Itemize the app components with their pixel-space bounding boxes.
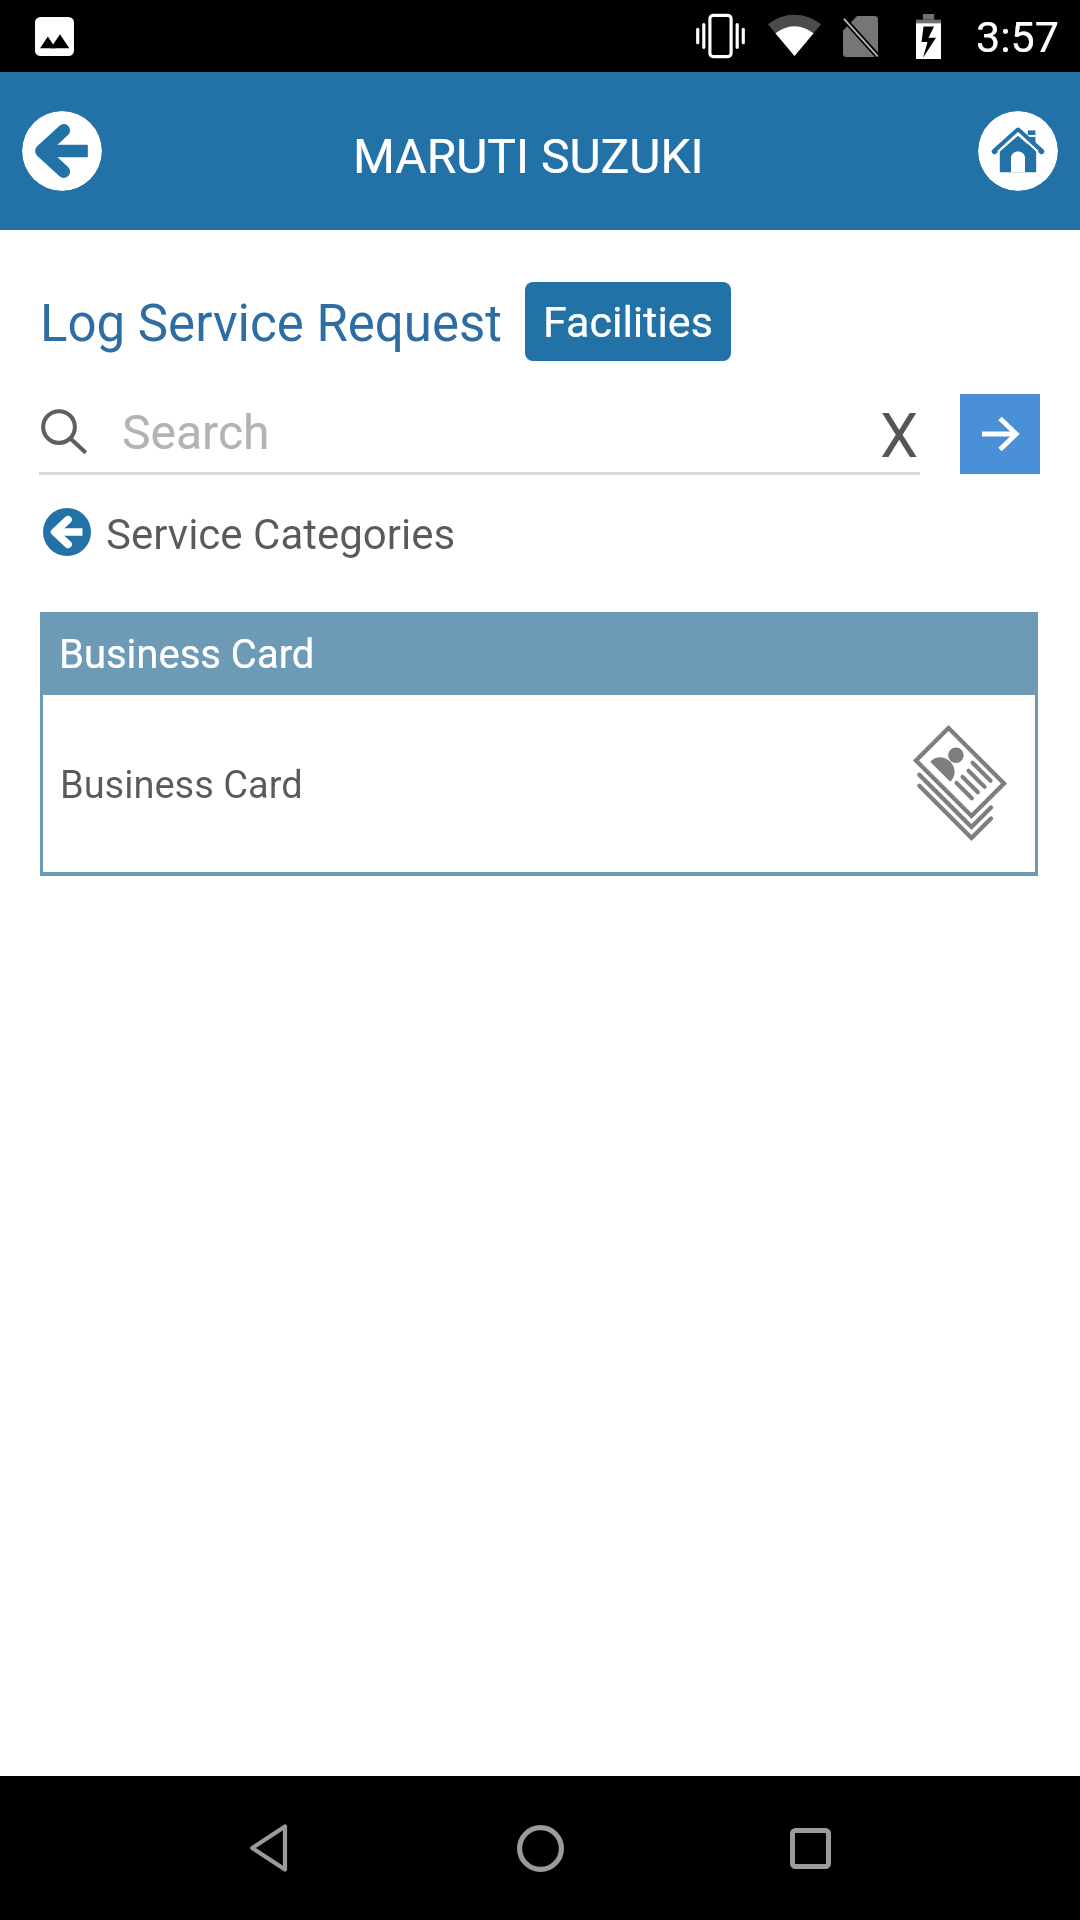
staticText: Business Card (60, 763, 303, 808)
staticText: Business Card (59, 631, 315, 678)
button[interactable]: Home (468, 1776, 612, 1920)
staticText: Search (122, 404, 270, 460)
button[interactable]: Service Categories (0, 508, 1080, 556)
button[interactable]: Submit search (960, 394, 1040, 474)
button[interactable]: Home (978, 111, 1058, 191)
button[interactable]: Business Card (40, 612, 1038, 876)
button[interactable]: Facilities (525, 282, 731, 361)
staticText: Log Service Request (40, 294, 503, 354)
button[interactable]: Clear search (868, 400, 930, 462)
staticText: Facilities (543, 297, 713, 347)
staticText: Service Categories (106, 510, 456, 558)
button[interactable]: Back (197, 1776, 341, 1920)
staticText: MARUTI SUZUKI (353, 128, 704, 184)
staticText: X (880, 400, 919, 462)
button[interactable]: Back (22, 111, 102, 191)
button[interactable]: Recent apps (738, 1776, 882, 1920)
staticText: 3:57 (976, 12, 1059, 62)
